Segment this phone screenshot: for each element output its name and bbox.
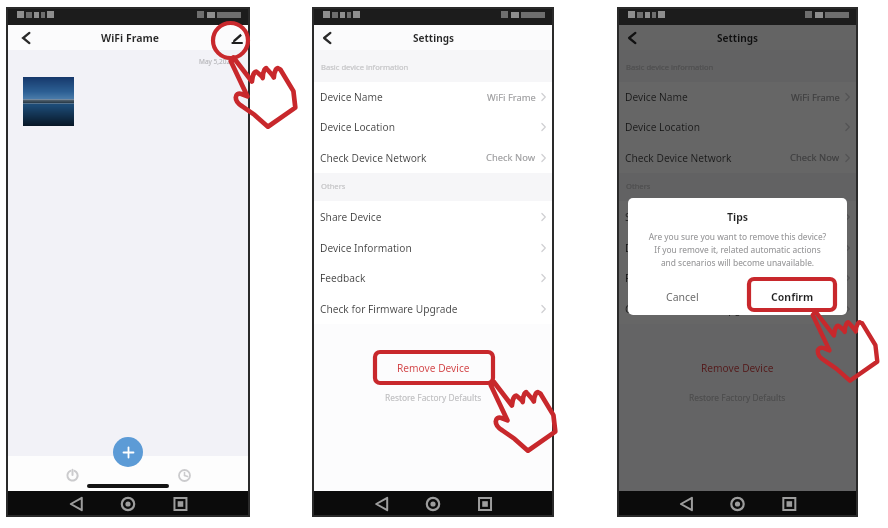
staticText: Device Information (625, 241, 717, 255)
button[interactable]: Cancel (628, 279, 737, 315)
staticText: Others (626, 181, 651, 191)
staticText: Feedback (320, 271, 366, 285)
button[interactable]: Share Device (312, 201, 554, 232)
button[interactable]: Back (6, 25, 46, 50)
button[interactable]: Back (312, 25, 342, 50)
button[interactable]: Power (64, 467, 80, 483)
staticText: Remove Device (397, 361, 470, 375)
staticText: Check for Firmware Upgrade (625, 302, 763, 316)
staticText: Share Device (320, 210, 382, 224)
staticText: Tips (628, 210, 847, 224)
staticText: WiFi Frame (487, 91, 536, 104)
staticText: Others (321, 181, 346, 191)
staticText: Restore Factory Defaults (385, 392, 482, 403)
button[interactable]: Device Name (312, 82, 554, 112)
staticText: Settings (413, 31, 454, 45)
button[interactable]: Check for Firmware Upgrade (312, 293, 554, 324)
staticText: Remove Device (701, 361, 774, 375)
button[interactable]: Device Information (617, 232, 858, 263)
button[interactable]: Back (617, 25, 647, 50)
button[interactable]: Confirm (737, 279, 847, 315)
button[interactable]: Check for Firmware Upgrade (617, 293, 858, 324)
button[interactable]: Feedback (617, 263, 858, 293)
staticText: Check Device Network (320, 151, 427, 165)
button[interactable]: Remove Device (312, 353, 554, 382)
button[interactable]: Check Device Network (312, 142, 554, 173)
staticText: Device Name (320, 90, 383, 104)
staticText: Restore Factory Defaults (689, 392, 786, 403)
staticText: Check Device Network (625, 151, 732, 165)
staticText: Check for Firmware Upgrade (320, 302, 458, 316)
button[interactable]: Device Information (312, 232, 554, 263)
staticText: Feedback (625, 271, 671, 285)
staticText: Check Now (486, 151, 536, 164)
button[interactable]: Timer (176, 467, 192, 483)
button[interactable]: Device Location (617, 112, 858, 142)
button[interactable]: Photo (23, 77, 74, 126)
button[interactable]: Feedback (312, 263, 554, 293)
staticText: Cancel (666, 290, 699, 304)
button[interactable]: Check Device Network (617, 142, 858, 173)
staticText: WiFi Frame (101, 31, 159, 45)
staticText: Device Name (625, 90, 688, 104)
staticText: Check Now (790, 151, 840, 164)
staticText: Share Device (625, 210, 687, 224)
button[interactable]: Restore Factory Defaults (312, 382, 554, 412)
staticText: Settings (717, 31, 758, 45)
button[interactable]: Add (113, 437, 143, 467)
button[interactable]: Share Device (617, 201, 858, 232)
staticText: Device Location (320, 120, 395, 134)
button[interactable]: Remove Device (617, 353, 858, 382)
button[interactable]: Device Location (312, 112, 554, 142)
staticText: Confirm (771, 290, 814, 304)
button[interactable]: Edit (220, 25, 250, 50)
staticText: Device Information (320, 241, 412, 255)
staticText: Are you sure you want to remove this dev… (631, 231, 844, 269)
button[interactable]: Restore Factory Defaults (617, 382, 858, 412)
staticText: WiFi Frame (791, 91, 840, 104)
staticText: Basic device information (321, 62, 409, 72)
button[interactable]: Device Name (617, 82, 858, 112)
staticText: May 5,2021 (199, 57, 234, 66)
staticText: Basic device information (626, 62, 714, 72)
staticText: Device Location (625, 120, 700, 134)
